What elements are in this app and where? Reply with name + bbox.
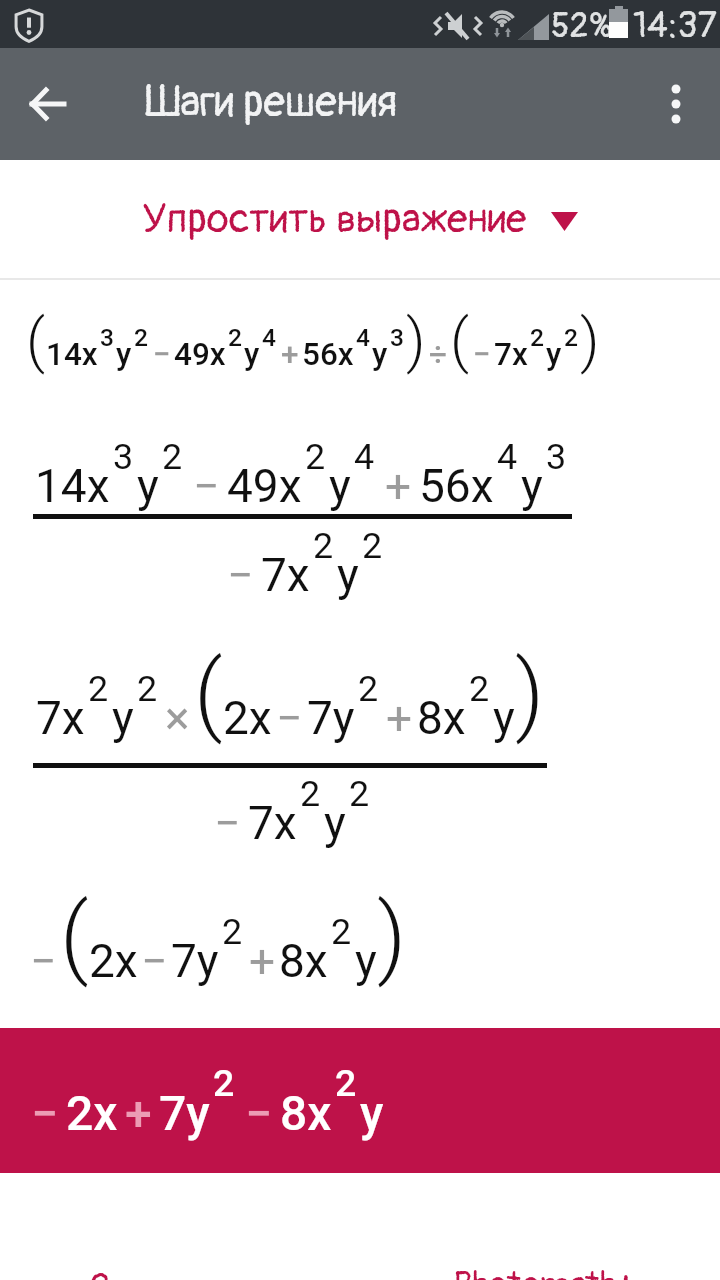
staticText: 2	[88, 668, 109, 710]
staticText: −	[245, 1085, 273, 1141]
staticText: 2	[222, 911, 243, 953]
staticText: 2	[349, 773, 370, 815]
staticText: 2	[305, 436, 326, 478]
staticText: 8x	[279, 934, 328, 988]
staticText: 2	[137, 668, 158, 710]
staticText: y	[244, 336, 260, 373]
staticText: 3	[113, 436, 134, 478]
staticText: 52%	[551, 5, 614, 47]
staticText: 2	[313, 525, 334, 567]
staticText: 3	[546, 436, 567, 478]
staticText: 8x	[417, 691, 466, 745]
staticText: Упростить выражение	[142, 194, 527, 245]
staticText: +	[386, 691, 413, 745]
staticText: 2	[213, 1061, 235, 1105]
staticText: ÷	[429, 336, 447, 373]
staticText: )	[377, 884, 407, 989]
staticText: 49x	[174, 336, 226, 373]
staticText: −	[227, 548, 254, 602]
staticText: −	[31, 1085, 59, 1141]
staticText: 2	[564, 323, 578, 352]
staticText: −	[473, 336, 491, 373]
staticText: )	[580, 305, 600, 375]
staticText: +	[249, 934, 276, 988]
staticText: 7x	[36, 691, 85, 745]
staticText: −	[30, 934, 57, 988]
staticText: 2x	[89, 934, 138, 988]
staticText: y	[324, 796, 346, 850]
staticText: 2x	[66, 1085, 118, 1141]
button[interactable]: Photomath+	[453, 1263, 637, 1280]
staticText: 2	[335, 1061, 357, 1105]
staticText: (	[26, 305, 46, 375]
button[interactable]: Упростить выражение	[0, 186, 720, 252]
staticText: 7y	[307, 691, 355, 745]
staticText: y	[116, 336, 132, 373]
staticText: y	[372, 336, 388, 373]
staticText: y	[137, 459, 159, 513]
staticText: 4	[497, 436, 518, 478]
staticText: 7x	[261, 548, 310, 602]
button[interactable]: Затем	[88, 1265, 192, 1280]
staticText: y	[546, 336, 562, 373]
staticText: +	[125, 1085, 152, 1141]
staticText: 14:37	[633, 3, 717, 48]
staticText: 56x	[419, 459, 494, 513]
staticText: 56x	[302, 336, 354, 373]
button[interactable]	[648, 76, 704, 132]
staticText: 14x	[35, 459, 110, 513]
button[interactable]	[16, 72, 80, 136]
staticText: y	[493, 691, 515, 745]
staticText: 2	[162, 436, 183, 478]
staticText: y	[521, 459, 543, 513]
staticText: 2x	[223, 691, 272, 745]
staticText: 2	[331, 911, 352, 953]
staticText: 3	[100, 323, 114, 352]
staticText: 3	[390, 323, 404, 352]
staticText: 2	[358, 668, 379, 710]
staticText: 7x	[494, 336, 528, 373]
staticText: 4	[262, 323, 276, 352]
staticText: +	[385, 459, 412, 513]
staticText: y	[355, 934, 377, 988]
staticText: −	[214, 796, 241, 850]
staticText: 7y	[159, 1085, 210, 1141]
staticText: y	[337, 548, 359, 602]
staticText: 2	[134, 323, 148, 352]
staticText: 8x	[280, 1085, 332, 1141]
staticText: 49x	[227, 459, 302, 513]
staticText: (	[60, 884, 89, 989]
staticText: 2	[228, 323, 242, 352]
staticText: +	[281, 336, 299, 373]
staticText: )	[515, 641, 545, 746]
staticText: (	[450, 305, 470, 375]
staticText: 2	[530, 323, 544, 352]
staticText: 4	[354, 436, 375, 478]
staticText: (	[194, 641, 223, 746]
staticText: 7y	[171, 934, 219, 988]
staticText: 2	[469, 668, 490, 710]
staticText: −	[153, 336, 171, 373]
staticText: 4	[356, 323, 370, 352]
staticText: 2	[362, 525, 383, 567]
staticText: −	[193, 459, 220, 513]
staticText: )	[406, 305, 426, 375]
staticText: y	[329, 459, 351, 513]
staticText: −	[141, 934, 168, 988]
staticText: ×	[165, 691, 190, 745]
staticText: −	[276, 691, 303, 745]
staticText: y	[360, 1085, 384, 1141]
staticText: 2	[300, 773, 321, 815]
staticText: Шаги решения	[145, 76, 398, 130]
staticText: 14x	[46, 336, 98, 373]
staticText: y	[112, 691, 134, 745]
staticText: 7x	[248, 796, 297, 850]
button[interactable]: −	[0, 1028, 720, 1173]
